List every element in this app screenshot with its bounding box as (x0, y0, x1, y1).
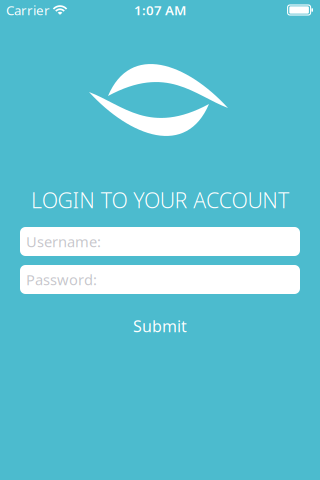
staticText: LOGIN TO YOUR ACCOUNT (31, 186, 289, 214)
staticText: 1:07 AM (134, 1, 186, 19)
staticText: Password: (26, 270, 97, 289)
staticText: Username: (26, 232, 101, 251)
staticText: Submit (133, 315, 187, 337)
staticText: Carrier (6, 1, 50, 19)
button[interactable]: Username: (20, 227, 300, 256)
button[interactable]: Submit (105, 315, 215, 337)
button[interactable]: Password: (20, 265, 300, 294)
